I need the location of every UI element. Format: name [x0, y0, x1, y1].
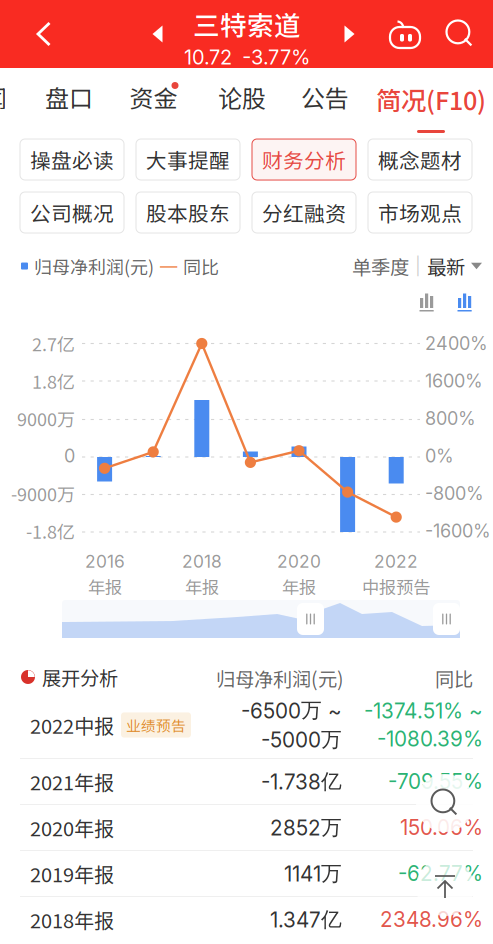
button[interactable]: 公司概况	[20, 192, 124, 233]
staticText: 800%	[425, 408, 476, 429]
button[interactable]: 论股	[200, 68, 284, 126]
staticText: 2019年报	[30, 859, 114, 888]
button[interactable]: Bar chart	[412, 290, 442, 314]
staticText: 分红融资	[262, 197, 346, 227]
staticText: 年报	[88, 574, 122, 599]
staticText: -800%	[425, 483, 484, 504]
staticText: -9000万	[11, 480, 75, 507]
staticText: -5000万	[261, 726, 342, 752]
button[interactable]: Search	[414, 772, 476, 834]
button[interactable]: 2019年报	[0, 851, 493, 896]
button[interactable]: 分红融资	[252, 192, 356, 233]
staticText: 闻	[0, 80, 7, 114]
staticText: 同比	[435, 664, 473, 692]
staticText: 2020年报	[30, 813, 114, 842]
button[interactable]: 股本股东	[136, 192, 240, 233]
staticText: 展开分析	[42, 663, 118, 691]
button[interactable]: 公告	[283, 68, 367, 126]
button[interactable]: Previous stock	[140, 0, 176, 68]
button[interactable]: Scroll to top	[414, 856, 476, 918]
staticText: 1141万	[284, 860, 342, 886]
staticText: 2852万	[270, 814, 342, 840]
staticText: 盘口	[45, 80, 93, 114]
staticText: 股本股东	[146, 197, 230, 227]
staticText: 2018年报	[30, 905, 114, 934]
button[interactable]: 财务分析	[252, 139, 356, 180]
staticText: 年报	[185, 574, 219, 599]
button[interactable]: 盘口	[27, 68, 111, 126]
staticText: 0	[64, 445, 75, 467]
button[interactable]: 2020年报	[0, 805, 493, 850]
staticText: 论股	[218, 80, 266, 114]
staticText: 财务分析	[262, 144, 346, 174]
button[interactable]: Column chart	[450, 290, 480, 314]
staticText: 2.7亿	[32, 330, 75, 357]
staticText: -1080.39%	[377, 726, 483, 751]
button[interactable]: 概念题材	[368, 139, 472, 180]
staticText: —	[160, 255, 177, 276]
button[interactable]: 操盘必读	[20, 139, 124, 180]
staticText: 2348.96%	[380, 907, 483, 932]
button[interactable]: 大事提醒	[136, 139, 240, 180]
staticText: 简况(F10)	[376, 81, 486, 117]
button[interactable]: 资金	[111, 68, 195, 126]
staticText: -709.55%	[388, 769, 483, 794]
button[interactable]: 展开分析	[21, 663, 118, 691]
button[interactable]: 市场观点	[368, 192, 472, 233]
staticText: 10.72	[184, 45, 232, 69]
staticText: 2020	[277, 551, 321, 572]
staticText: 2018	[182, 551, 222, 572]
staticText: 150.06%	[400, 815, 483, 840]
staticText: 2400%	[425, 333, 488, 354]
staticText: -1.738亿	[261, 768, 342, 794]
staticText: 资金	[129, 80, 177, 114]
staticText: -6500万 ~	[241, 697, 342, 723]
staticText: 概念题材	[378, 144, 462, 174]
staticText: -62.77%	[398, 861, 483, 886]
staticText: 2022中报	[30, 710, 114, 739]
staticText: 最新	[427, 252, 465, 280]
staticText: 归母净利润(元)	[34, 253, 154, 279]
staticText: 业绩预告	[126, 714, 186, 736]
staticText: 2021年报	[30, 767, 114, 796]
staticText: 三特索道	[193, 5, 301, 43]
button[interactable]: 2022中报	[0, 692, 493, 758]
staticText: 1.8亿	[32, 368, 75, 394]
staticText: 同比	[183, 253, 219, 279]
staticText: -1600%	[425, 520, 491, 542]
staticText: 市场观点	[378, 197, 462, 227]
button[interactable]: 闻	[0, 68, 7, 126]
staticText: -3.77%	[242, 45, 310, 69]
staticText: 操盘必读	[30, 144, 114, 174]
staticText: 中报预告	[362, 574, 430, 599]
staticText: 1600%	[425, 370, 483, 392]
staticText: 公告	[301, 80, 349, 114]
staticText: 2016	[85, 551, 125, 572]
button[interactable]: 单季度	[352, 252, 482, 280]
staticText: -1.8亿	[26, 518, 75, 544]
staticText: 大事提醒	[146, 144, 230, 174]
staticText: |	[415, 255, 421, 276]
staticText: 年报	[282, 574, 316, 599]
staticText: -1374.51% ~	[364, 698, 483, 723]
button[interactable]: Next stock	[332, 0, 368, 68]
staticText: 公司概况	[30, 197, 114, 227]
button[interactable]: Back	[16, 0, 72, 68]
staticText: 归母净利润(元)	[216, 664, 344, 692]
staticText: 0%	[425, 445, 454, 467]
staticText: 2022	[374, 551, 418, 572]
button[interactable]: 2021年报	[0, 759, 493, 804]
staticText: 单季度	[352, 252, 409, 280]
button[interactable]: 简况(F10)	[375, 68, 487, 130]
staticText: 9000万	[17, 405, 75, 432]
button[interactable]: Search	[436, 0, 484, 68]
button[interactable]: AI assistant	[381, 0, 429, 68]
button[interactable]: 2018年报	[0, 897, 493, 942]
staticText: 1.347亿	[270, 906, 342, 932]
